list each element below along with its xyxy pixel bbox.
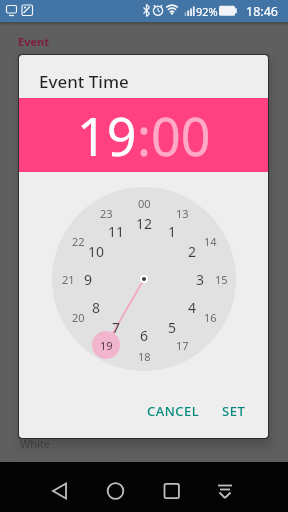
staticText: CANCEL <box>147 402 200 420</box>
staticText: 23 <box>100 206 113 221</box>
button[interactable]: CANCEL <box>145 398 201 423</box>
staticText: 17 <box>176 338 189 353</box>
staticText: 4 <box>188 298 197 317</box>
staticText: 7 <box>112 318 121 337</box>
button[interactable] <box>42 469 78 505</box>
staticText: : <box>137 100 151 171</box>
staticText: 13 <box>176 206 189 221</box>
button[interactable] <box>97 469 133 505</box>
staticText: 00 <box>138 196 151 211</box>
staticText: 22 <box>72 234 85 249</box>
staticText: 18 <box>138 349 151 364</box>
staticText: SET <box>222 402 246 420</box>
staticText: 12 <box>136 214 153 233</box>
staticText: 92% <box>196 4 218 19</box>
staticText: 19 <box>100 338 113 353</box>
staticText: 8 <box>92 298 101 317</box>
staticText: 15 <box>215 272 228 287</box>
button[interactable]: SET <box>215 398 253 423</box>
staticText: Event Time <box>39 70 129 92</box>
staticText: 11 <box>108 222 125 241</box>
staticText: 10 <box>88 242 105 261</box>
staticText: 14 <box>204 234 217 249</box>
staticText: Event <box>18 34 49 49</box>
staticText: 6 <box>140 326 149 345</box>
staticText: 2 <box>188 242 197 261</box>
button[interactable] <box>153 469 189 505</box>
staticText: 5 <box>168 318 177 337</box>
button[interactable] <box>207 469 243 505</box>
staticText: 18:46 <box>246 3 278 20</box>
staticText: 00 <box>151 100 211 171</box>
staticText: 1 <box>168 222 177 241</box>
staticText: 16 <box>204 310 217 325</box>
staticText: 21 <box>62 272 75 287</box>
staticText: 3 <box>196 270 205 289</box>
staticText: 9 <box>84 270 93 289</box>
staticText: White <box>20 436 51 451</box>
staticText: 19 <box>77 100 137 171</box>
staticText: 20 <box>72 310 85 325</box>
